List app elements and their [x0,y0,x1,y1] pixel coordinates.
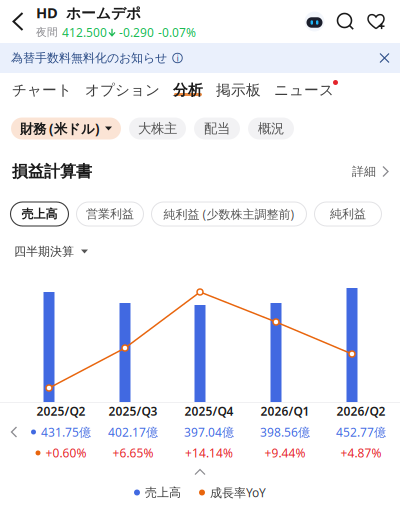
staticText: チャート [12,81,72,99]
staticText: 431.75億 [41,424,91,440]
staticText: 2025/Q4 [184,403,233,419]
button[interactable]: 売上高 [10,202,68,226]
staticText: -0.07% [158,24,196,40]
button[interactable]: 純利益 (少数株主調整前) [151,202,306,226]
staticText: 大株主 [138,120,177,137]
button[interactable]: 詳細 [352,164,388,179]
staticText: 為替手数料無料化のお知らせ [11,51,167,65]
staticText: 売上高 [145,485,181,500]
staticText: 成長率YoY [210,484,266,500]
button[interactable]: 配当 [194,117,240,139]
button[interactable]: ニュース [274,73,334,107]
staticText: 2026/Q1 [260,403,309,419]
button[interactable]: 営業利益 [76,202,143,226]
staticText: +0.60% [45,445,86,461]
staticText: i [176,52,178,64]
staticText: 配当 [204,120,230,137]
staticText: 掲示板 [216,81,261,99]
staticText: 452.77億 [336,424,386,440]
staticText: 397.04億 [184,424,234,440]
staticText: 412.500 [62,24,107,40]
button[interactable]: Add to watchlist [361,0,392,43]
staticText: 純利益 (少数株主調整前) [163,206,294,222]
button[interactable]: 掲示板 [216,73,261,107]
button[interactable]: 大株主 [129,117,186,139]
staticText: HD ホームデポ [36,3,141,22]
button[interactable]: 概況 [248,117,294,139]
staticText: 2025/Q2 [36,403,85,419]
staticText: +4.87% [340,445,381,461]
button[interactable]: AI assistant [299,0,330,43]
button[interactable]: オプション [85,73,160,107]
button[interactable]: Collapse [178,467,222,477]
button[interactable]: Search [330,0,361,43]
staticText: 402.17億 [108,424,158,440]
staticText: 純利益 [330,207,366,221]
staticText: オプション [85,81,160,99]
staticText: 財務 (米ドル) [20,120,100,137]
staticText: 概況 [258,120,284,137]
staticText: 2026/Q2 [336,403,385,419]
button[interactable]: 分析 [173,73,203,107]
staticText: 夜間 [36,26,58,39]
button[interactable]: 財務 (米ドル) [11,117,121,139]
staticText: 営業利益 [86,207,134,221]
staticText: +6.65% [112,445,153,461]
staticText: +9.44% [264,445,305,461]
staticText: 四半期決算 [14,244,74,259]
button[interactable]: Previous period [1,403,27,461]
staticText: 詳細 [352,164,376,179]
button[interactable]: チャート [12,73,72,107]
staticText: -0.290 [119,24,154,40]
staticText: 分析 [173,81,203,99]
button[interactable]: Back [0,0,36,43]
button[interactable]: 純利益 [314,202,381,226]
button[interactable]: 四半期決算 [14,244,88,259]
staticText: ニュース [274,81,334,99]
button[interactable]: 為替手数料無料化のお知らせ [0,43,400,73]
staticText: 398.56億 [260,424,310,440]
staticText: +14.14% [185,445,233,461]
staticText: 売上高 [21,207,57,221]
staticText: 2025/Q3 [108,403,157,419]
staticText: 損益計算書 [12,162,92,181]
